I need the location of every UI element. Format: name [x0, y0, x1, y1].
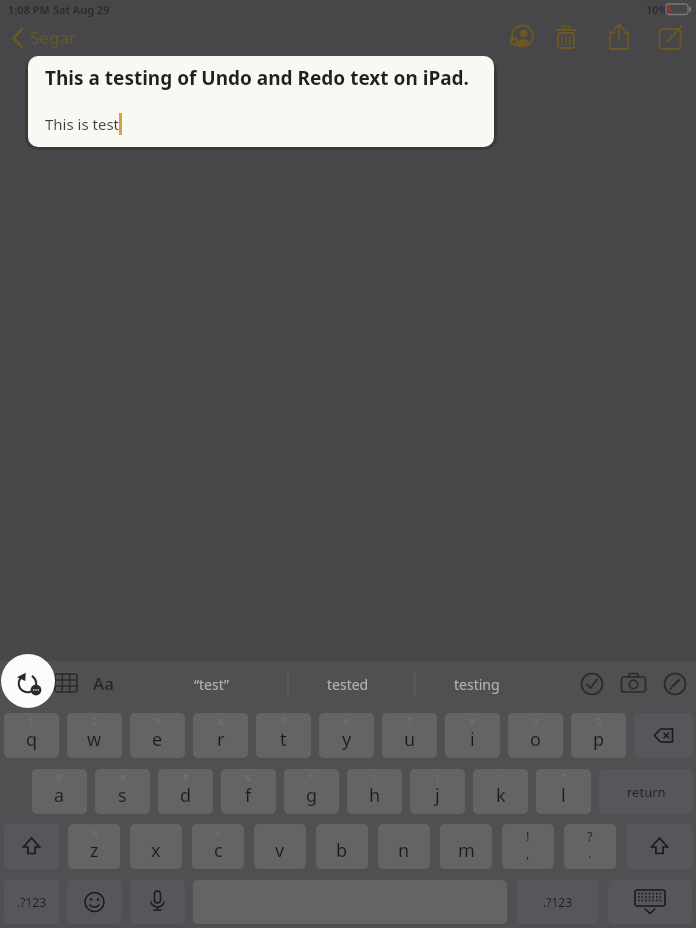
button[interactable]: + [192, 824, 244, 869]
staticText: f [245, 783, 252, 808]
staticText: c [214, 838, 223, 863]
button[interactable] [1, 654, 55, 708]
button[interactable]: ( [347, 769, 402, 814]
staticText: g [306, 783, 318, 808]
staticText: a [54, 783, 65, 808]
staticText: m [458, 838, 475, 863]
button[interactable]: Segar [10, 26, 80, 50]
button[interactable] [54, 673, 78, 694]
staticText: Sat Aug 29 [53, 2, 110, 17]
button[interactable]: return [599, 769, 693, 814]
button[interactable]: % [68, 824, 120, 869]
staticText: q [26, 727, 38, 752]
button[interactable] [608, 880, 692, 924]
button[interactable] [605, 23, 633, 51]
staticText: . [588, 844, 592, 862]
button[interactable]: $ [158, 769, 213, 814]
button[interactable]: 4 [193, 713, 248, 758]
button[interactable]: ” [536, 769, 591, 814]
staticText: t [280, 727, 287, 752]
staticText: # [120, 771, 126, 783]
staticText: y [342, 727, 352, 752]
button[interactable]: & [221, 769, 276, 814]
button[interactable]: .?123 [517, 880, 599, 924]
button[interactable]: 8 [445, 713, 500, 758]
button[interactable]: * [284, 769, 339, 814]
button[interactable] [578, 670, 606, 698]
staticText: @ [55, 771, 64, 783]
staticText: This a testing of Undo and Redo text on … [45, 65, 469, 91]
staticText: b [336, 838, 348, 863]
button[interactable]: 9 [508, 713, 563, 758]
button[interactable]: testing [425, 666, 529, 702]
staticText: , [526, 844, 530, 862]
button[interactable] [4, 824, 59, 869]
button[interactable]: ? [564, 824, 616, 869]
button[interactable]: 5 [256, 713, 311, 758]
button[interactable]: = [254, 824, 306, 869]
button[interactable] [661, 670, 689, 698]
button[interactable]: ) [410, 769, 465, 814]
staticText: e [152, 727, 163, 752]
button[interactable] [552, 23, 580, 51]
button[interactable] [634, 713, 693, 758]
button[interactable]: 2 [67, 713, 122, 758]
button[interactable]: 1 [4, 713, 59, 758]
button[interactable] [620, 670, 648, 698]
button[interactable]: .?123 [4, 880, 59, 924]
button[interactable]: ' [473, 769, 528, 814]
staticText: ” [562, 771, 566, 783]
staticText: w [87, 727, 102, 752]
button[interactable]: ! [502, 824, 554, 869]
button[interactable]: 6 [319, 713, 374, 758]
staticText: o [530, 727, 541, 752]
button[interactable]: / [316, 824, 368, 869]
button[interactable]: # [95, 769, 150, 814]
staticText: testing [454, 675, 500, 694]
staticText: v [275, 838, 285, 863]
staticText: 2 [92, 715, 98, 727]
staticText: z [90, 838, 99, 863]
button[interactable]: tested [296, 666, 400, 702]
button[interactable]: Aa [86, 668, 120, 698]
staticText: 6 [344, 715, 350, 727]
staticText: 3 [155, 715, 161, 727]
staticText: p [593, 727, 605, 752]
staticText: h [369, 783, 381, 808]
button[interactable] [67, 880, 122, 924]
button[interactable]: : [440, 824, 492, 869]
button[interactable]: ; [378, 824, 430, 869]
button[interactable]: 7 [382, 713, 437, 758]
button[interactable]: - [130, 824, 182, 869]
staticText: ! [526, 827, 530, 845]
staticText: d [180, 783, 192, 808]
staticText: $ [183, 771, 189, 783]
button[interactable]: This a testing of Undo and Redo text on … [28, 56, 494, 147]
staticText: k [496, 783, 506, 808]
staticText: i [470, 727, 475, 752]
staticText: 8 [470, 715, 476, 727]
staticText: 5 [281, 715, 287, 727]
staticText: 0 [596, 715, 602, 727]
staticText: 7 [407, 715, 413, 727]
staticText: s [118, 783, 127, 808]
button[interactable]: @ [32, 769, 87, 814]
button[interactable] [626, 824, 693, 869]
staticText: u [404, 727, 416, 752]
button[interactable] [657, 23, 685, 51]
staticText: 1 [29, 715, 35, 727]
button[interactable] [130, 880, 185, 924]
staticText: + [215, 826, 221, 838]
staticText: .?123 [17, 894, 47, 910]
button[interactable]: 3 [130, 713, 185, 758]
staticText: l [561, 783, 566, 808]
staticText: x [151, 838, 161, 863]
button[interactable]: “test” [160, 666, 264, 702]
button[interactable] [508, 23, 536, 51]
staticText: r [217, 727, 225, 752]
button[interactable]: 0 [571, 713, 626, 758]
